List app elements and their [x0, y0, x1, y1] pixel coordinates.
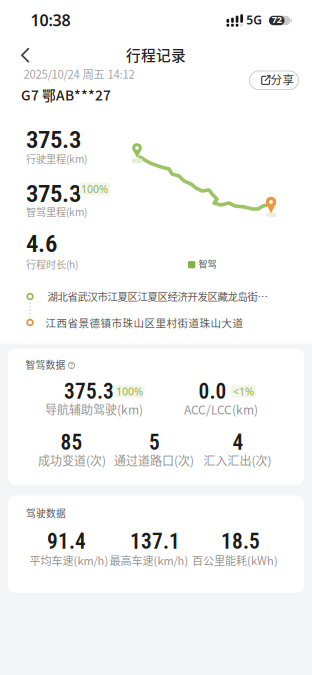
- staticText: 湖北省武汉市江夏区江夏区经济开发区藏龙岛街道栋青南路: [47, 289, 272, 304]
- staticText: 72: [272, 13, 282, 26]
- staticText: 4.6: [26, 229, 57, 258]
- button[interactable]: 分享: [249, 70, 299, 90]
- button[interactable]: 智驾数据说明: [66, 360, 76, 370]
- staticText: 驾驶数据: [26, 506, 66, 520]
- staticText: 平均车速(km/h): [29, 552, 108, 568]
- staticText: 91.4: [47, 529, 86, 554]
- staticText: 分享: [270, 71, 294, 88]
- staticText: 行驶里程(km): [26, 151, 87, 166]
- staticText: 智驾里程(km): [26, 204, 87, 219]
- staticText: 375.3: [26, 179, 81, 208]
- staticText: 智驾: [198, 257, 216, 270]
- staticText: 375.3: [26, 125, 81, 154]
- staticText: 18.5: [221, 529, 260, 554]
- staticText: 100%: [81, 182, 108, 196]
- staticText: 导航辅助驾驶(km): [45, 400, 143, 418]
- staticText: 375.3: [64, 379, 114, 404]
- staticText: 85: [60, 430, 82, 455]
- staticText: 2025/10/24 周五 14:12: [23, 65, 134, 82]
- staticText: 智驾数据: [25, 357, 65, 371]
- staticText: 0.0: [198, 379, 226, 404]
- staticText: 100%: [116, 384, 143, 398]
- staticText: 最高车速(km/h): [109, 552, 188, 568]
- staticText: ACC/LCC(km): [184, 400, 258, 418]
- staticText: ?: [70, 361, 73, 370]
- staticText: 5G: [246, 12, 262, 28]
- staticText: 4: [232, 430, 243, 455]
- staticText: 10:38: [30, 9, 70, 31]
- staticText: 百公里能耗(kWh): [192, 552, 278, 568]
- staticText: 137.1: [130, 529, 180, 554]
- staticText: 5: [149, 430, 160, 455]
- staticText: 行程时长(h): [26, 257, 78, 271]
- staticText: <1%: [233, 384, 254, 398]
- staticText: 行程记录: [126, 44, 186, 65]
- staticText: 成功变道(次): [38, 452, 106, 469]
- staticText: 汇入汇出(次): [203, 452, 271, 469]
- staticText: 江西省景德镇市珠山区里村街道珠山大道: [45, 315, 243, 330]
- staticText: 通过道路口(次): [114, 452, 194, 469]
- staticText: G7 鄂AB***27: [21, 84, 111, 104]
- button[interactable]: 返回: [7, 37, 43, 73]
